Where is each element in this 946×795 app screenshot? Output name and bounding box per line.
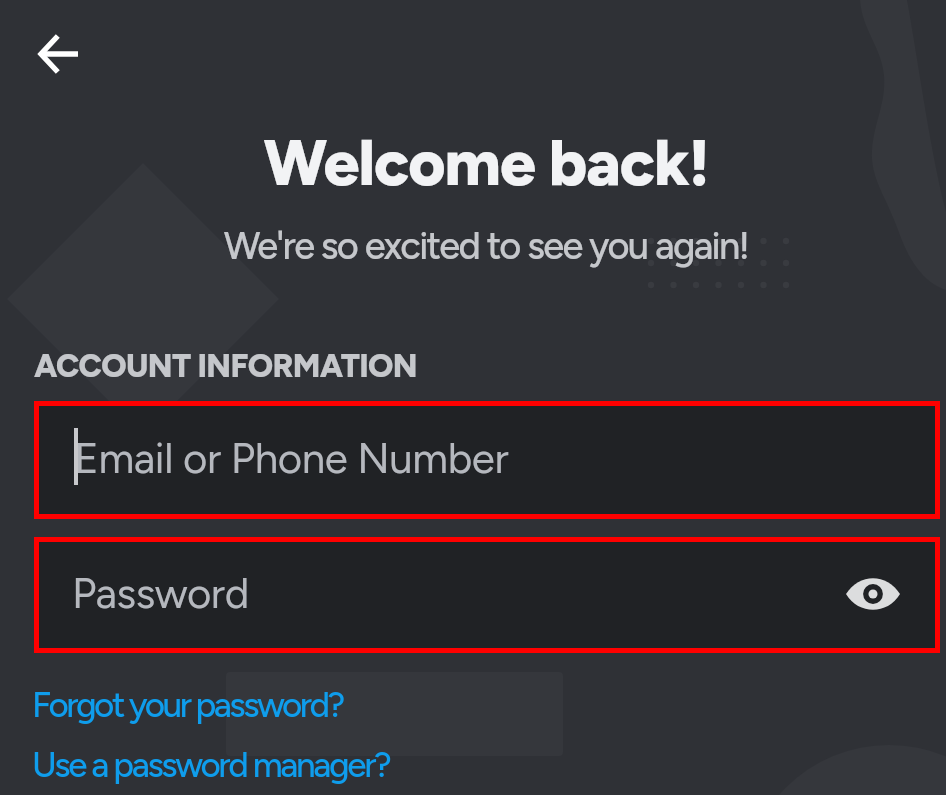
button[interactable]: Email or Phone Number (34, 401, 940, 519)
staticText: Password (72, 568, 249, 618)
button[interactable]: Back (24, 19, 94, 89)
button[interactable]: Password (34, 537, 940, 653)
staticText: Welcome back! (13, 124, 946, 795)
staticText: We're so excited to see you again! (13, 223, 946, 795)
staticText: ACCOUNT INFORMATION (34, 347, 418, 385)
button[interactable]: Show password (837, 558, 909, 630)
button[interactable]: Forgot your password? (32, 684, 343, 726)
button[interactable]: Use a password manager? (32, 744, 390, 786)
staticText: Email or Phone Number (74, 433, 509, 483)
